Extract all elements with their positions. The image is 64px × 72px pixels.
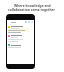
staticText: collaboration come together xyxy=(8,7,56,11)
staticText: Where knowledge and xyxy=(14,3,51,7)
